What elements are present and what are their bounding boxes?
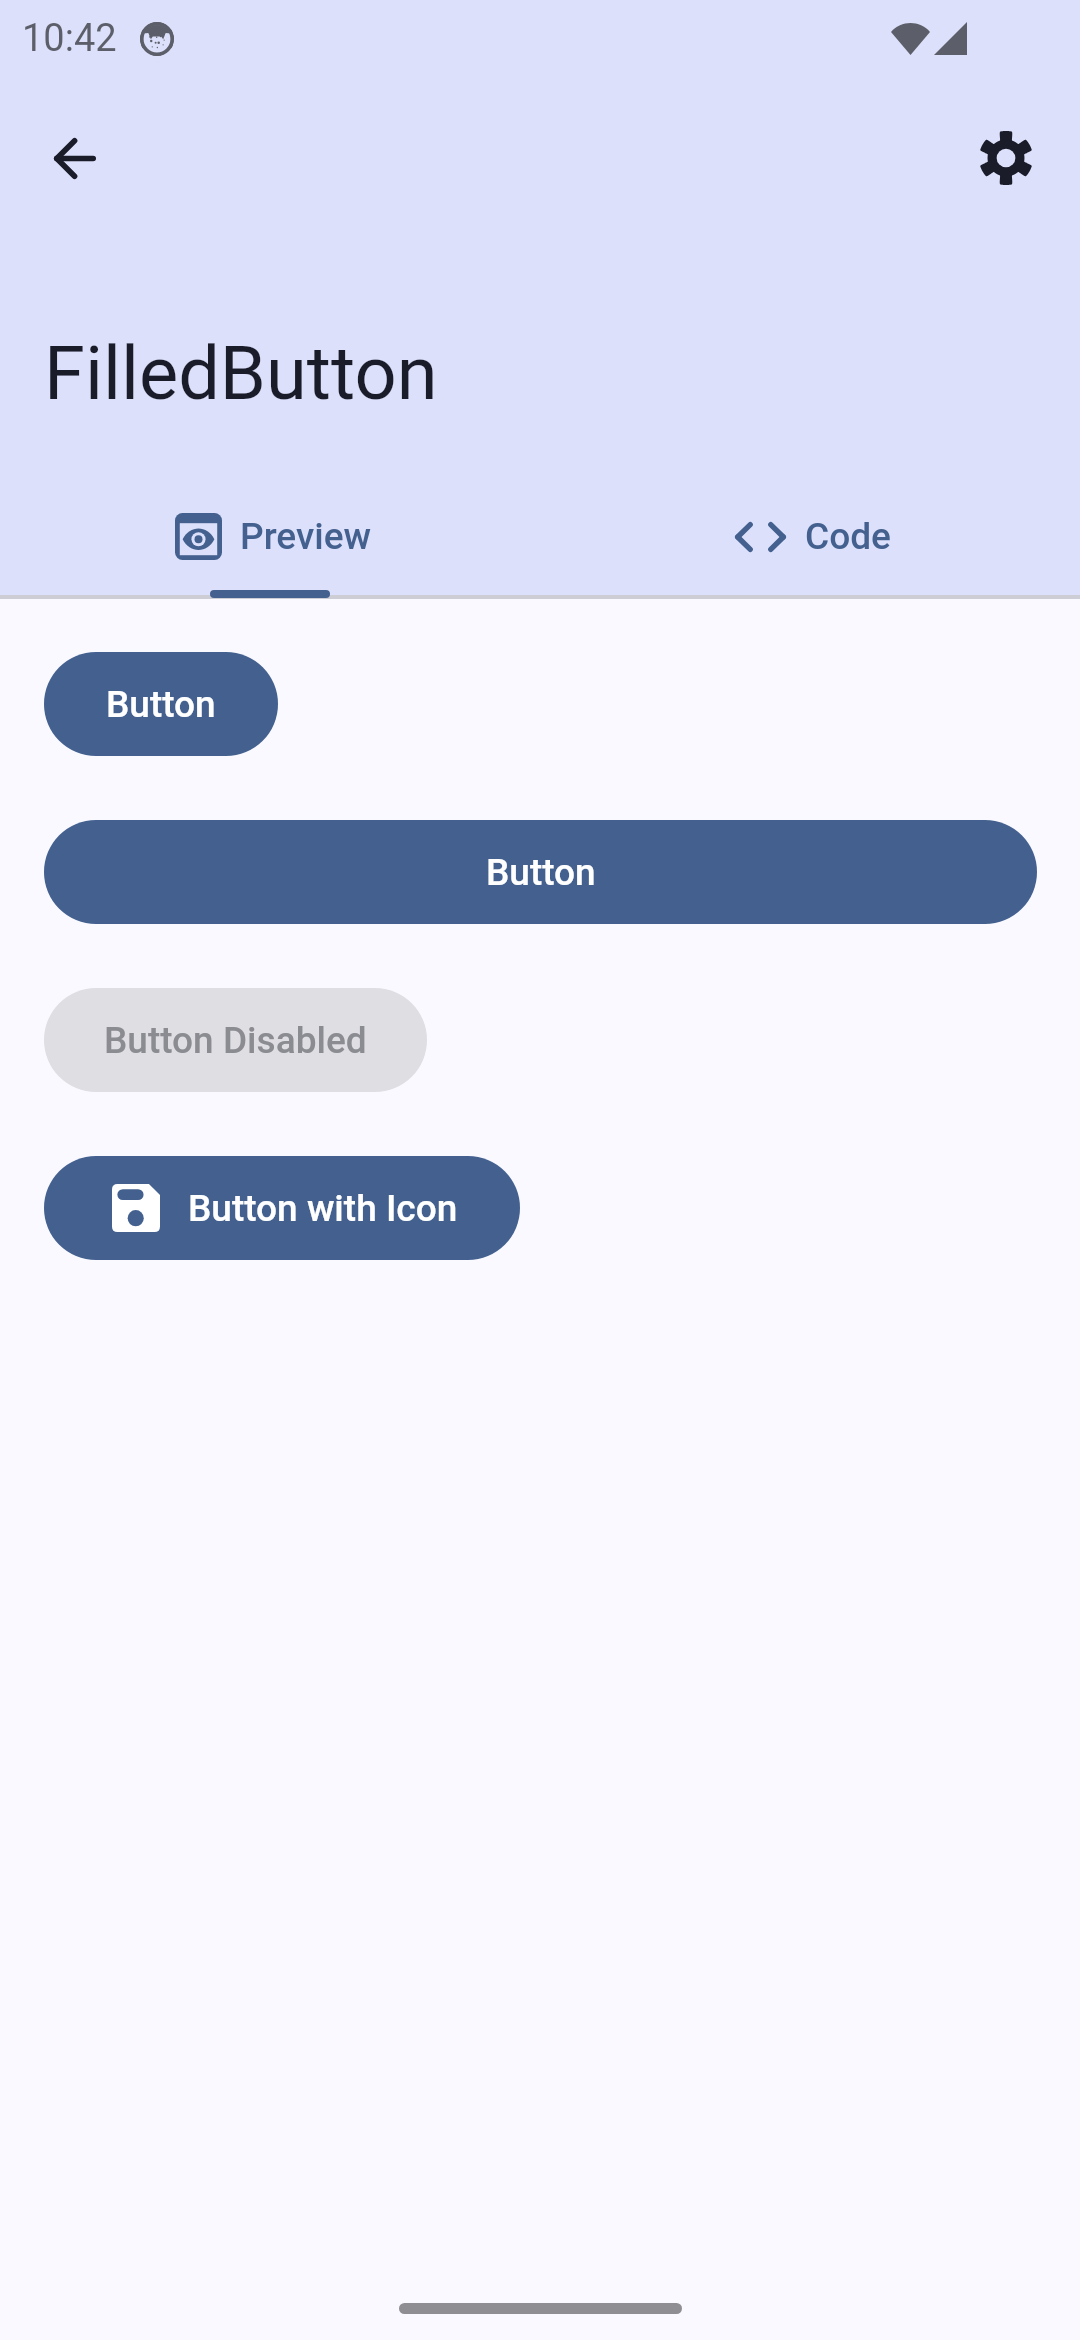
button[interactable]: Preview: [3, 485, 543, 588]
staticText: Button: [106, 683, 216, 726]
staticText: Button with Icon: [188, 1187, 458, 1230]
button[interactable]: Button Disabled: [44, 988, 427, 1092]
button[interactable]: Button: [44, 652, 278, 756]
staticText: Button Disabled: [104, 1019, 367, 1062]
button[interactable]: Settings: [958, 110, 1054, 206]
button[interactable]: Back: [27, 110, 123, 206]
staticText: Button: [486, 851, 596, 894]
staticText: 10:42: [22, 16, 117, 61]
staticText: Preview: [240, 515, 372, 558]
button[interactable]: Code: [543, 485, 1080, 588]
button[interactable]: Button with Icon: [44, 1156, 520, 1260]
button[interactable]: Button: [44, 820, 1037, 924]
staticText: Code: [805, 515, 891, 558]
staticText: FilledButton: [44, 330, 438, 417]
